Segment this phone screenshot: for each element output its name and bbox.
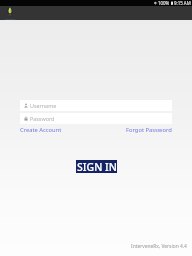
staticText: InterveneRx bbox=[5, 18, 16, 20]
staticText: 100% bbox=[158, 0, 170, 6]
button[interactable]: Create Account bbox=[20, 126, 62, 134]
button[interactable]: App logo bbox=[4, 7, 16, 20]
button[interactable]: Password bbox=[20, 113, 172, 124]
button[interactable]: SIGN IN bbox=[76, 160, 117, 173]
staticText: 9:15 AM bbox=[174, 0, 191, 6]
staticText: SIGN IN bbox=[77, 160, 117, 173]
staticText: Username bbox=[30, 102, 57, 109]
staticText: InterveneRx, Version 4.4 bbox=[131, 243, 187, 250]
button[interactable]: Username bbox=[20, 100, 172, 111]
button[interactable]: Forgot Password bbox=[126, 126, 172, 134]
staticText: Password bbox=[30, 115, 55, 122]
